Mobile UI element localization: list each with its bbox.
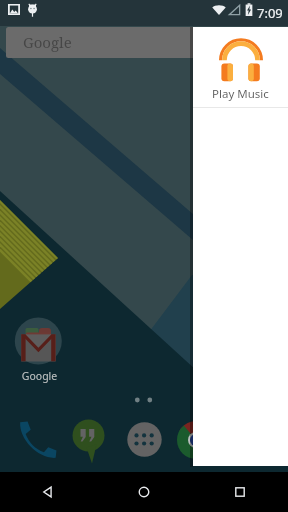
staticText: Play Music	[212, 86, 269, 102]
button[interactable]: Home	[96, 472, 192, 512]
button[interactable]: Back	[0, 472, 96, 512]
staticText: Google	[13, 369, 66, 383]
button[interactable]: Phone	[19, 420, 58, 459]
button[interactable]: Google	[6, 27, 238, 58]
button[interactable]: Play Music	[193, 27, 288, 107]
button[interactable]: Chrome	[177, 421, 215, 459]
button[interactable]: Recent apps	[192, 472, 288, 512]
button[interactable]: Apps	[126, 421, 163, 458]
staticText: 7:09	[257, 4, 283, 22]
staticText: Google	[23, 32, 72, 52]
button[interactable]: Hangouts	[70, 417, 108, 465]
button[interactable]: Google	[12, 315, 65, 385]
